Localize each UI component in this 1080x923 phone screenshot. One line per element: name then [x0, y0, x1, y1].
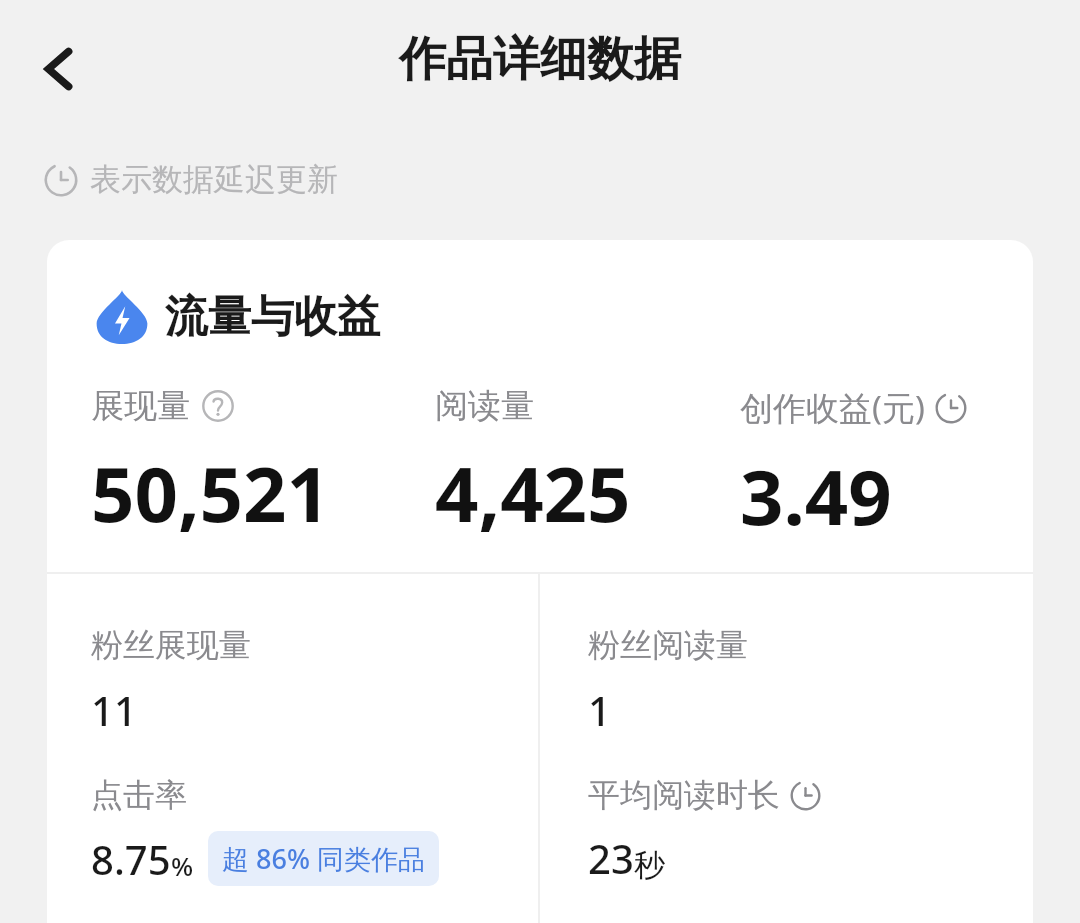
staticText: 展现量: [91, 385, 190, 427]
staticText: 3.49: [740, 444, 892, 548]
button[interactable]: 创作收益(元): [740, 385, 967, 548]
staticText: 点击率: [91, 775, 187, 815]
staticText: 4,425: [435, 441, 631, 545]
staticText: 阅读量: [435, 385, 534, 427]
staticText: 粉丝展现量: [91, 625, 251, 665]
button[interactable]: 阅读量: [435, 385, 631, 545]
staticText: 1: [588, 683, 611, 737]
button[interactable]: 超 86% 同类作品: [208, 831, 439, 886]
staticText: 超 86% 同类作品: [222, 840, 425, 877]
staticText: 流量与收益: [165, 290, 380, 344]
staticText: 23: [588, 831, 634, 885]
staticText: 11: [91, 683, 137, 737]
staticText: 表示数据延迟更新: [90, 160, 338, 199]
staticText: 创作收益(元): [740, 385, 925, 430]
staticText: 8.75: [91, 832, 171, 886]
button[interactable]: Back: [18, 28, 100, 110]
button[interactable]: 展现量: [91, 385, 331, 545]
staticText: 50,521: [91, 441, 331, 545]
staticText: 秒: [634, 846, 665, 885]
staticText: 粉丝阅读量: [588, 625, 748, 665]
staticText: %: [171, 848, 194, 883]
staticText: 作品详细数据: [0, 30, 1080, 89]
staticText: 平均阅读时长: [588, 775, 780, 815]
